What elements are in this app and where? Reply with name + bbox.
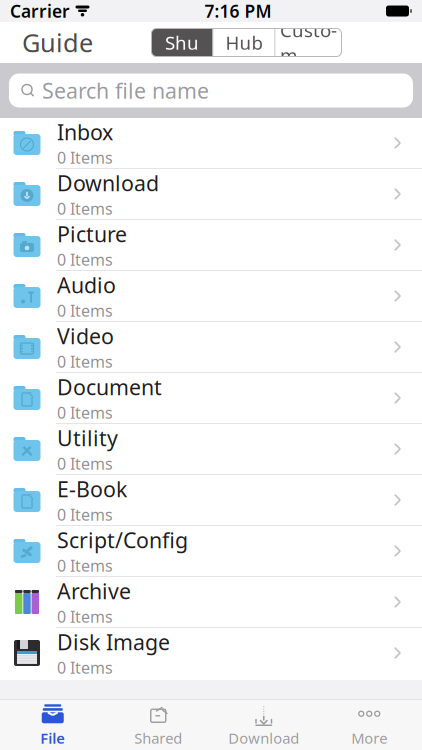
staticText: 0 Items xyxy=(57,504,113,525)
staticText: Audio xyxy=(57,271,116,299)
button[interactable]: E-Book xyxy=(0,475,422,526)
button[interactable]: More xyxy=(316,700,422,750)
staticText: Picture xyxy=(57,220,127,248)
staticText: Download xyxy=(57,169,159,197)
staticText: Utility xyxy=(57,424,118,452)
staticText: More xyxy=(351,728,387,748)
staticText: 7:16 PM xyxy=(204,0,271,22)
button[interactable]: Download xyxy=(211,700,316,750)
button[interactable]: Inbox xyxy=(0,118,422,169)
staticText: File xyxy=(40,728,65,748)
button[interactable]: Script/Config xyxy=(0,526,422,577)
staticText: Shu xyxy=(165,30,199,55)
button[interactable]: Shu xyxy=(151,28,212,56)
staticText: Carrier xyxy=(10,0,70,22)
button[interactable]: Download xyxy=(0,169,422,220)
staticText: 0 Items xyxy=(57,657,113,678)
button[interactable]: File xyxy=(0,700,105,750)
staticText: 0 Items xyxy=(57,453,113,474)
button[interactable]: Archive xyxy=(0,577,422,628)
staticText: Video xyxy=(57,322,114,350)
button[interactable]: Shared xyxy=(105,700,211,750)
staticText: Hub xyxy=(225,30,262,55)
staticText: Disk Image xyxy=(57,628,170,656)
button[interactable]: Document xyxy=(0,373,422,424)
button[interactable]: Disk Image xyxy=(0,628,422,679)
staticText: Custom xyxy=(280,18,337,67)
staticText: 0 Items xyxy=(57,555,113,576)
button[interactable]: Video xyxy=(0,322,422,373)
staticText: E-Book xyxy=(57,475,127,503)
staticText: 0 Items xyxy=(57,198,113,219)
staticText: Guide xyxy=(22,26,93,59)
staticText: 0 Items xyxy=(57,606,113,627)
staticText: 0 Items xyxy=(57,300,113,321)
button[interactable]: Search file name xyxy=(9,73,413,107)
staticText: 0 Items xyxy=(57,249,113,270)
button[interactable]: Hub xyxy=(213,28,274,56)
button[interactable]: Utility xyxy=(0,424,422,475)
staticText: 0 Items xyxy=(57,402,113,423)
button[interactable]: Audio xyxy=(0,271,422,322)
staticText: Shared xyxy=(134,728,182,748)
staticText: 0 Items xyxy=(57,147,113,168)
staticText: Script/Config xyxy=(57,526,188,554)
button[interactable]: Custom xyxy=(275,28,341,56)
staticText: Archive xyxy=(57,577,131,605)
staticText: Document xyxy=(57,373,162,401)
staticText: Search file name xyxy=(42,76,209,105)
staticText: Download xyxy=(228,728,299,748)
button[interactable]: Picture xyxy=(0,220,422,271)
staticText: 0 Items xyxy=(57,351,113,372)
staticText: Inbox xyxy=(57,118,113,146)
